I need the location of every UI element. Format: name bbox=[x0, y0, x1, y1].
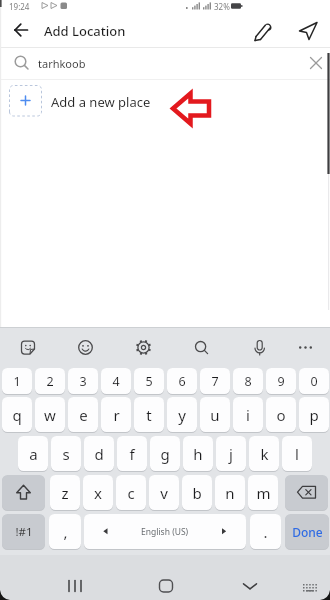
button[interactable]: , bbox=[49, 514, 81, 549]
button[interactable]: 0 bbox=[299, 368, 329, 394]
staticText: 9 bbox=[277, 373, 285, 390]
button[interactable]: v bbox=[149, 475, 179, 510]
button[interactable]: 1 bbox=[2, 368, 32, 394]
staticText: 7 bbox=[211, 373, 219, 390]
button[interactable] bbox=[251, 20, 273, 41]
button[interactable]: z bbox=[50, 475, 80, 510]
button[interactable]: 3 bbox=[68, 368, 98, 394]
button[interactable]: 5 bbox=[134, 368, 164, 394]
button[interactable] bbox=[19, 338, 38, 357]
button[interactable]: k bbox=[249, 436, 279, 471]
staticText: w bbox=[44, 405, 56, 425]
button[interactable] bbox=[296, 338, 315, 357]
button[interactable] bbox=[285, 475, 328, 510]
button[interactable]: 4 bbox=[101, 368, 131, 394]
staticText: v bbox=[160, 483, 168, 503]
staticText: h bbox=[193, 444, 203, 464]
button[interactable] bbox=[300, 580, 320, 596]
button[interactable]: 7 bbox=[200, 368, 230, 394]
button[interactable]: u bbox=[200, 397, 230, 432]
staticText: tarhkoob bbox=[38, 56, 86, 71]
staticText: English (US) bbox=[141, 526, 189, 538]
button[interactable] bbox=[0, 80, 330, 122]
staticText: s bbox=[62, 444, 70, 464]
staticText: i bbox=[246, 405, 250, 425]
staticText: a bbox=[29, 444, 38, 464]
button[interactable]: y bbox=[167, 397, 197, 432]
staticText: o bbox=[276, 405, 286, 425]
staticText: y bbox=[178, 405, 186, 425]
button[interactable] bbox=[134, 338, 153, 357]
button[interactable]: n bbox=[215, 475, 245, 510]
button[interactable]: l bbox=[282, 436, 312, 471]
button[interactable]: w bbox=[35, 397, 65, 432]
button[interactable]: h bbox=[183, 436, 213, 471]
staticText: p bbox=[309, 405, 319, 425]
button[interactable]: !#1 bbox=[2, 514, 45, 549]
button[interactable] bbox=[155, 575, 177, 597]
button[interactable]: p bbox=[299, 397, 329, 432]
staticText: 6 bbox=[178, 373, 186, 390]
button[interactable]: d bbox=[84, 436, 114, 471]
staticText: 19:24 bbox=[9, 1, 30, 12]
staticText: !#1 bbox=[15, 524, 33, 540]
staticText: x bbox=[94, 483, 102, 503]
staticText: 5 bbox=[145, 373, 153, 390]
staticText: j bbox=[229, 444, 233, 464]
staticText: , bbox=[63, 522, 68, 542]
staticText: 4 bbox=[112, 373, 120, 390]
button[interactable]: x bbox=[83, 475, 113, 510]
button[interactable] bbox=[76, 338, 95, 357]
staticText: g bbox=[160, 444, 170, 464]
staticText: z bbox=[61, 483, 69, 503]
button[interactable]: o bbox=[266, 397, 296, 432]
button[interactable]: a bbox=[18, 436, 48, 471]
button[interactable] bbox=[10, 21, 34, 39]
staticText: 3 bbox=[79, 373, 87, 390]
button[interactable]: i bbox=[233, 397, 263, 432]
button[interactable]: English (US) bbox=[84, 514, 246, 549]
button[interactable]: 8 bbox=[233, 368, 263, 394]
staticText: 1 bbox=[13, 373, 21, 390]
staticText: b bbox=[192, 483, 202, 503]
button[interactable] bbox=[239, 575, 261, 597]
button[interactable]: s bbox=[51, 436, 81, 471]
button[interactable]: m bbox=[248, 475, 278, 510]
button[interactable] bbox=[2, 475, 45, 510]
staticText: d bbox=[94, 444, 104, 464]
staticText: n bbox=[225, 483, 235, 503]
staticText: r bbox=[113, 405, 120, 425]
button[interactable]: 6 bbox=[167, 368, 197, 394]
button[interactable] bbox=[192, 338, 211, 357]
button[interactable] bbox=[0, 47, 330, 79]
button[interactable]: b bbox=[182, 475, 212, 510]
staticText: 8 bbox=[244, 373, 252, 390]
button[interactable]: r bbox=[101, 397, 131, 432]
staticText: l bbox=[295, 444, 299, 464]
button[interactable]: j bbox=[216, 436, 246, 471]
button[interactable]: 9 bbox=[266, 368, 296, 394]
button[interactable]: f bbox=[117, 436, 147, 471]
staticText: 2 bbox=[46, 373, 54, 390]
button[interactable]: Done bbox=[285, 514, 329, 549]
button[interactable]: . bbox=[250, 514, 281, 549]
staticText: 0 bbox=[310, 373, 318, 390]
button[interactable]: 2 bbox=[35, 368, 65, 394]
button[interactable]: c bbox=[116, 475, 146, 510]
button[interactable] bbox=[308, 55, 324, 71]
staticText: u bbox=[210, 405, 220, 425]
button[interactable]: t bbox=[134, 397, 164, 432]
button[interactable] bbox=[250, 338, 269, 357]
staticText: Done bbox=[292, 524, 323, 540]
staticText: c bbox=[127, 483, 135, 503]
button[interactable] bbox=[64, 575, 86, 597]
button[interactable]: q bbox=[2, 397, 32, 432]
button[interactable]: g bbox=[150, 436, 180, 471]
staticText: m bbox=[256, 483, 271, 503]
staticText: e bbox=[79, 405, 88, 425]
button[interactable] bbox=[296, 19, 322, 42]
button[interactable]: e bbox=[68, 397, 98, 432]
staticText: Add Location bbox=[44, 22, 126, 40]
staticText: Add a new place bbox=[51, 93, 151, 111]
staticText: t bbox=[146, 405, 152, 425]
